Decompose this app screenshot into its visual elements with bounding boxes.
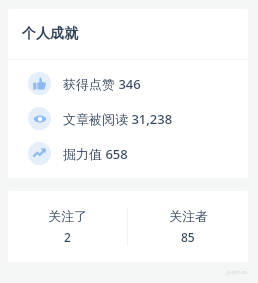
staticText: juejin.cn: [227, 269, 247, 276]
staticText: 掘力值 658: [63, 145, 128, 163]
button[interactable]: Power value: [8, 136, 248, 171]
staticText: 关注了: [48, 208, 87, 224]
other: Views: [28, 107, 51, 130]
staticText: 2: [64, 229, 71, 245]
button[interactable]: Views: [8, 101, 248, 136]
staticText: 个人成就: [22, 25, 78, 43]
button[interactable]: 关注者: [128, 202, 248, 251]
staticText: 关注者: [169, 208, 208, 224]
staticText: 获得点赞 346: [63, 75, 141, 93]
other: Power value: [28, 142, 51, 165]
staticText: 文章被阅读 31,238: [63, 110, 173, 128]
button[interactable]: Likes: [8, 66, 248, 101]
other: Likes: [28, 72, 51, 95]
button[interactable]: 关注了: [8, 202, 127, 251]
staticText: 85: [181, 229, 195, 245]
